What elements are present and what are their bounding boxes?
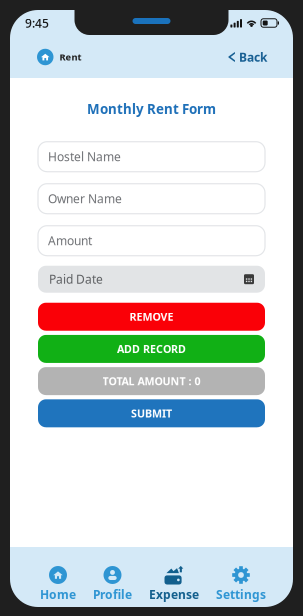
staticText: Back [239,49,267,65]
button[interactable]: Home [40,565,76,602]
staticText: 9:45 [25,15,49,31]
staticText: TOTAL AMOUNT : 0 [102,374,200,388]
button[interactable]: Hostel Name [38,142,265,172]
button[interactable]: Owner Name [38,184,265,214]
button[interactable]: Expense [149,565,199,602]
staticText: Expense [149,586,199,602]
staticText: REMOVE [129,310,173,324]
button[interactable]: Back [228,49,267,65]
button[interactable]: SUBMIT [38,399,265,427]
staticText: Rent [59,51,81,63]
button[interactable]: Settings [216,565,266,602]
button[interactable]: Amount [38,226,265,256]
staticText: Amount [48,233,92,249]
button[interactable]: TOTAL AMOUNT : 0 [38,367,265,395]
staticText: Profile [93,586,132,602]
button[interactable]: REMOVE [38,303,265,331]
staticText: ADD RECORD [117,342,186,356]
staticText: Paid Date [49,271,103,287]
staticText: SUBMIT [131,406,172,420]
staticText: Settings [216,586,266,602]
staticText: Monthly Rent Form [87,100,216,118]
button[interactable]: Profile [93,565,132,602]
button[interactable]: Paid Date [38,266,265,293]
button[interactable]: Rent [37,49,81,65]
button[interactable]: ADD RECORD [38,335,265,363]
staticText: Home [40,586,76,602]
staticText: Owner Name [48,191,122,207]
staticText: Hostel Name [48,149,121,165]
